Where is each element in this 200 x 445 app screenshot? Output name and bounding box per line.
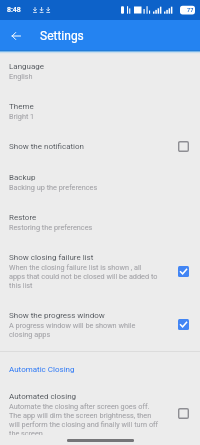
- staticText: Restore: [9, 211, 37, 223]
- staticText: 8:48: [7, 6, 21, 14]
- staticText: Backing up the preferences: [9, 183, 98, 192]
- button[interactable]: Automated closing: [0, 381, 200, 445]
- button[interactable]: Back: [6, 26, 25, 45]
- staticText: 77: [187, 7, 194, 13]
- staticText: Backup: [9, 171, 36, 183]
- staticText: Show the progress window: [9, 309, 105, 321]
- staticText: Automatic Closing: [9, 363, 75, 375]
- staticText: When the closing failure list is shown ,…: [9, 263, 159, 290]
- button[interactable]: Backup: [0, 162, 200, 202]
- staticText: Restoring the preferences: [9, 223, 93, 232]
- button[interactable]: Language: [0, 51, 200, 91]
- staticText: Automated closing: [9, 390, 77, 402]
- button[interactable]: Show the progress window: [0, 300, 200, 349]
- staticText: Show the notification: [9, 140, 85, 152]
- staticText: Bright 1: [9, 112, 35, 121]
- button[interactable]: Restore: [0, 202, 200, 242]
- staticText: Show closing failure list: [9, 251, 94, 263]
- staticText: A progress window will be shown while cl…: [9, 321, 159, 339]
- staticText: Language: [9, 60, 45, 72]
- button[interactable]: Show the notification: [0, 131, 200, 162]
- staticText: Theme: [9, 100, 34, 112]
- button[interactable]: Theme: [0, 91, 200, 131]
- button[interactable]: Show closing failure list: [0, 242, 200, 300]
- staticText: English: [9, 72, 33, 81]
- staticText: Automate the closing after screen goes o…: [9, 402, 159, 435]
- staticText: Settings: [40, 29, 84, 43]
